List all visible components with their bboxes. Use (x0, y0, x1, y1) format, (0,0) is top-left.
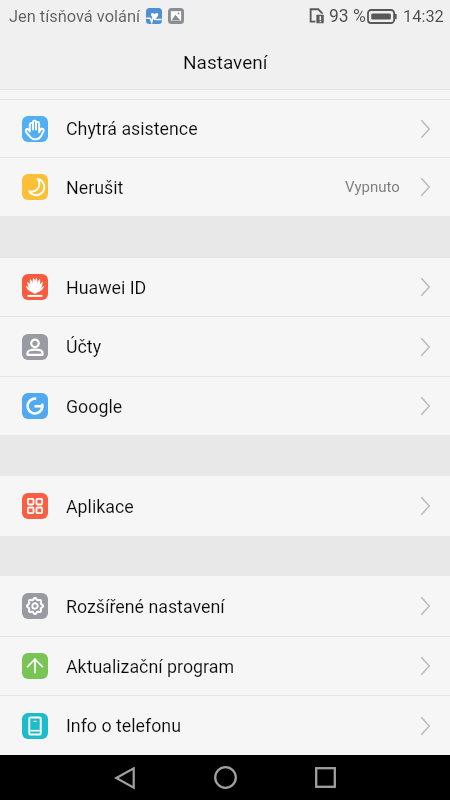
button[interactable]: Rozšířené nastavení (0, 576, 450, 636)
staticText: Nastavení (183, 51, 268, 73)
staticText: Vypnuto (345, 178, 400, 196)
staticText: 93 % (329, 6, 366, 27)
button[interactable]: Aktualizační program (0, 637, 450, 695)
button[interactable]: Aplikace (0, 476, 450, 536)
button[interactable]: Účty (0, 317, 450, 376)
staticText: Chytrá asistence (66, 118, 198, 139)
button[interactable]: Recent apps (275, 755, 375, 800)
staticText: Rozšířené nastavení (66, 596, 225, 617)
staticText: Huawei ID (66, 277, 147, 298)
staticText: Nerušit (66, 177, 124, 198)
staticText: Aplikace (66, 496, 134, 517)
button[interactable]: Back (75, 755, 175, 800)
staticText: Info o telefonu (66, 715, 181, 736)
button[interactable]: Info o telefonu (0, 696, 450, 755)
button[interactable]: Google (0, 377, 450, 435)
button[interactable]: Home (175, 755, 275, 800)
button[interactable]: Huawei ID (0, 258, 450, 316)
staticText: Aktualizační program (66, 656, 235, 677)
staticText: Jen tísňová volání (9, 7, 140, 26)
staticText: 14:32 (403, 7, 444, 26)
button[interactable]: Nerušit (0, 158, 450, 216)
staticText: Účty (66, 336, 102, 357)
button[interactable]: Chytrá asistence (0, 100, 450, 157)
staticText: Google (66, 396, 123, 417)
